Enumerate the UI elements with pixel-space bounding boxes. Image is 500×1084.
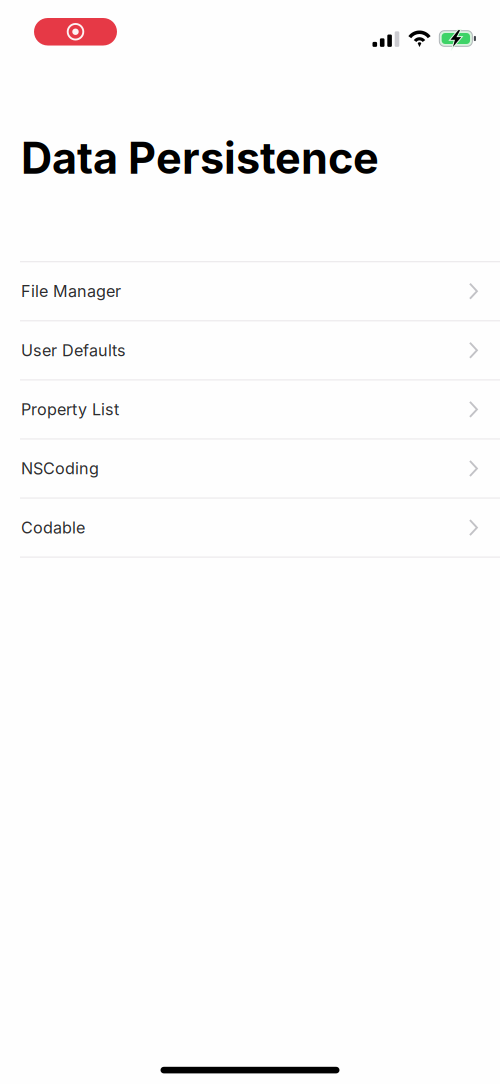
staticText: Property List: [21, 400, 119, 419]
staticText: Data Persistence: [21, 132, 379, 184]
button[interactable]: Codable: [0, 497, 500, 556]
staticText: User Defaults: [21, 340, 126, 360]
button[interactable]: File Manager: [0, 261, 500, 320]
staticText: File Manager: [21, 281, 121, 301]
staticText: Codable: [21, 518, 85, 537]
button[interactable]: NSCoding: [0, 438, 500, 497]
button[interactable]: Property List: [0, 379, 500, 438]
staticText: NSCoding: [21, 459, 99, 478]
button[interactable]: User Defaults: [0, 320, 500, 379]
button[interactable]: Stop screen recording: [34, 18, 117, 45]
